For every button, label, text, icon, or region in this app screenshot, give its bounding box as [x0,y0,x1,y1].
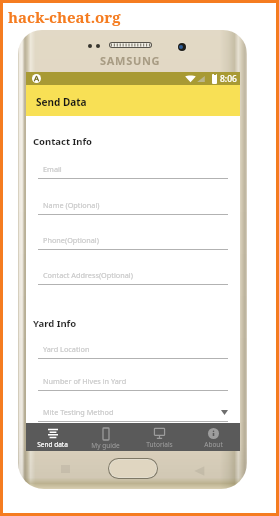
staticText: Name (Optional) [43,200,100,210]
button[interactable]: Email [38,160,228,179]
button[interactable]: Yard Location [38,340,228,359]
staticText: Tutorials [146,440,173,449]
staticText: Send data [37,440,68,449]
button[interactable]: Home [108,458,158,479]
button[interactable]: Name (Optional) [38,196,228,215]
button[interactable]: Number of Hives in Yard [38,372,228,391]
staticText: Phone(Optional) [43,235,99,245]
staticText: 8:06 [220,73,237,85]
staticText: Yard Location [43,344,90,354]
staticText: Yard Info [33,317,77,330]
staticText: My guide [91,441,120,450]
staticText: hack-cheat.org [8,7,121,27]
other: Back [193,465,205,477]
staticText: Contact Address(Optional) [43,270,133,280]
button[interactable]: My guide [79,423,132,451]
staticText: SAMSUNG [100,53,161,68]
button[interactable]: Phone(Optional) [38,231,228,250]
button[interactable]: Mite Testing Method [38,403,228,422]
button[interactable]: About [186,423,240,451]
staticText: Contact Info [33,135,93,148]
staticText: Mite Testing Method [43,407,114,417]
staticText: Number of Hives in Yard [43,376,127,386]
button[interactable]: Send data [26,423,79,451]
staticText: About [204,440,223,449]
staticText: Send Data [36,95,87,109]
button[interactable]: Tutorials [132,423,186,451]
staticText: Email [43,164,62,174]
button[interactable]: Contact Address(Optional) [38,266,228,285]
